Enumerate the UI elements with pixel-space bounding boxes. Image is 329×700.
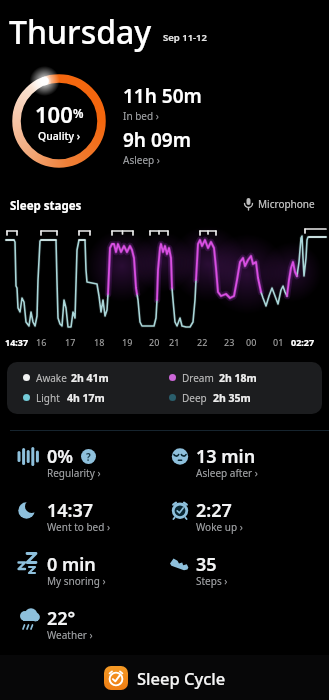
staticText: 18 — [94, 336, 105, 348]
staticText: 21 — [169, 336, 180, 348]
staticText: 02:27 — [291, 336, 315, 348]
staticText: 2h 18m — [219, 371, 257, 385]
staticText: 0% — [47, 444, 74, 469]
button[interactable]: 0% — [15, 444, 160, 488]
staticText: 14:37 — [5, 336, 29, 348]
staticText: My snoring › — [47, 574, 106, 588]
staticText: 11h 50m — [123, 83, 202, 109]
staticText: Went to bed › — [47, 520, 111, 534]
staticText: Asleep › — [123, 153, 160, 167]
button[interactable]: Awake — [7, 362, 322, 414]
staticText: % — [73, 105, 84, 121]
staticText: Sleep Cycle — [137, 667, 226, 689]
staticText: 23 — [224, 336, 235, 348]
staticText: Microphone — [258, 197, 315, 211]
button[interactable]: Sleep Cycle — [104, 666, 226, 690]
staticText: Weather › — [47, 628, 93, 642]
staticText: 4h 17m — [67, 391, 105, 405]
staticText: 22 — [197, 336, 208, 348]
staticText: 9h 09m — [123, 127, 191, 153]
staticText: Dream — [182, 371, 214, 385]
staticText: 16 — [36, 336, 47, 348]
staticText: 0 min — [47, 552, 96, 577]
staticText: 2h 41m — [71, 371, 109, 385]
button[interactable]: 100 — [4, 66, 114, 176]
button[interactable]: 22° — [15, 606, 160, 650]
button[interactable]: Microphone — [243, 197, 315, 211]
staticText: Asleep after › — [196, 466, 258, 480]
staticText: 2h 35m — [213, 391, 251, 405]
staticText: 00 — [246, 336, 257, 348]
button[interactable]: 9h 09m — [123, 127, 191, 167]
staticText: Regularity › — [47, 466, 101, 480]
staticText: ? — [86, 450, 91, 464]
staticText: Steps › — [196, 574, 228, 588]
staticText: 100 — [35, 99, 73, 129]
staticText: 17 — [65, 336, 76, 348]
staticText: 19 — [122, 336, 133, 348]
staticText: 14:37 — [47, 498, 94, 523]
staticText: Deep — [182, 391, 207, 405]
staticText: Woke up › — [196, 520, 243, 534]
button[interactable]: 2:27 — [167, 498, 312, 542]
button[interactable]: 14:37 — [15, 498, 160, 542]
staticText: 22° — [47, 606, 76, 631]
staticText: Awake — [36, 371, 67, 385]
staticText: Sleep stages — [10, 198, 82, 214]
button[interactable]: 13 min — [167, 444, 312, 488]
staticText: Sep 11-12 — [163, 31, 207, 44]
staticText: 20 — [149, 336, 160, 348]
staticText: In bed › — [123, 109, 159, 123]
staticText: Quality › — [38, 129, 81, 143]
staticText: 01 — [273, 336, 284, 348]
button[interactable]: 0 min — [15, 552, 160, 596]
button[interactable]: 35 — [167, 552, 312, 596]
staticText: Thursday — [9, 10, 152, 54]
staticText: Light — [36, 391, 60, 405]
staticText: 13 min — [196, 444, 256, 469]
staticText: 2:27 — [196, 498, 232, 523]
button[interactable]: 11h 50m — [123, 83, 202, 123]
staticText: 35 — [196, 552, 217, 577]
